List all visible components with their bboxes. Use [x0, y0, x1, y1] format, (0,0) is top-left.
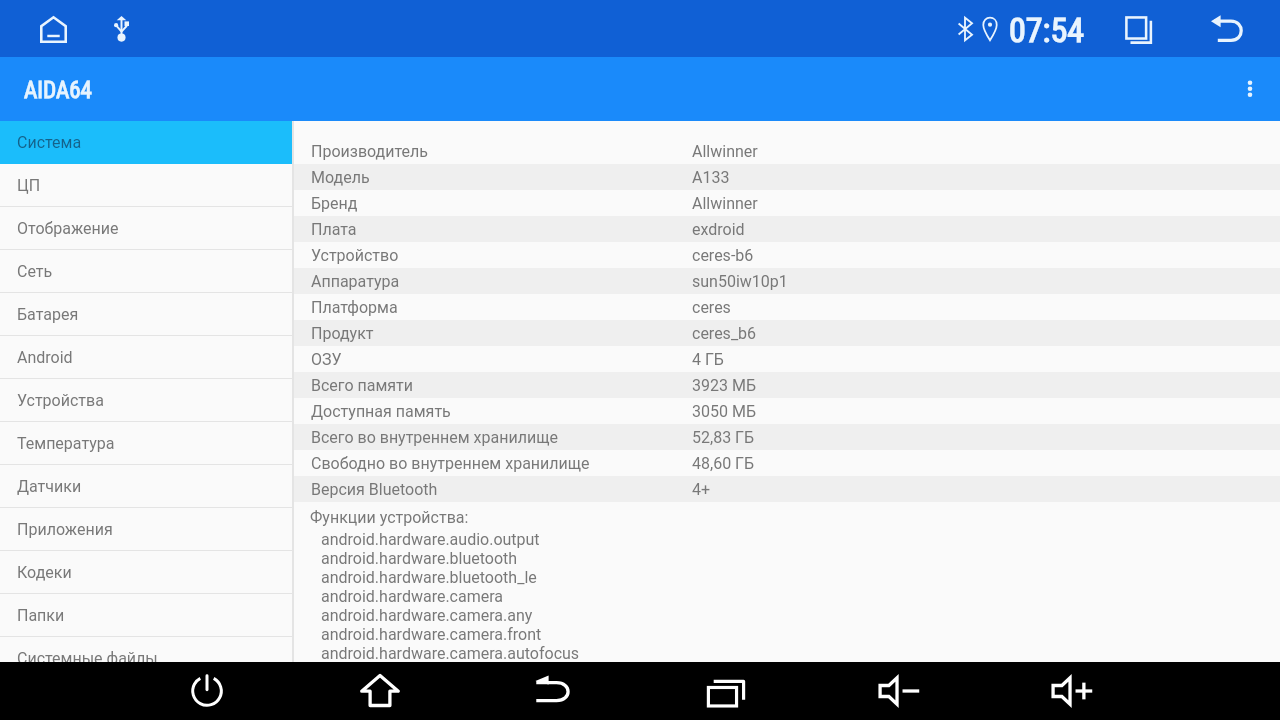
button[interactable]: Батарея [0, 293, 292, 336]
staticText: android.hardware.audio.output [321, 530, 540, 549]
staticText: Функции устройства: [310, 508, 469, 527]
button[interactable]: Back [1206, 9, 1248, 51]
button[interactable]: Power [179, 663, 235, 719]
staticText: android.hardware.camera.autofocus [321, 644, 580, 662]
staticText: 3050 МБ [692, 402, 756, 421]
button[interactable]: Volume up [1044, 663, 1100, 719]
button[interactable]: Устройства [0, 379, 292, 422]
staticText: android.hardware.bluetooth_le [321, 568, 537, 587]
button[interactable]: Отображение [0, 207, 292, 250]
other: Location [982, 17, 998, 41]
button[interactable]: Папки [0, 594, 292, 637]
staticText: AIDA64 [24, 77, 92, 104]
staticText: Отображение [17, 219, 119, 238]
button[interactable]: Всего во внутреннем хранилище [294, 424, 1280, 450]
staticText: A133 [692, 168, 730, 187]
button[interactable]: Продукт [294, 320, 1280, 346]
button[interactable]: Home [40, 16, 67, 43]
button[interactable]: Recents [698, 663, 754, 719]
button[interactable]: Android [0, 336, 292, 379]
button[interactable]: Плата [294, 216, 1280, 242]
button[interactable]: Приложения [0, 508, 292, 551]
button[interactable]: Платформа [294, 294, 1280, 320]
staticText: Система [17, 133, 82, 152]
staticText: ceres_b6 [692, 324, 757, 343]
staticText: Всего памяти [311, 376, 413, 395]
button[interactable]: Back [525, 663, 581, 719]
staticText: 4+ [692, 480, 711, 499]
button[interactable]: Кодеки [0, 551, 292, 594]
staticText: Температура [17, 434, 115, 453]
button[interactable]: Recent apps [1120, 9, 1160, 49]
staticText: ceres [692, 298, 731, 317]
staticText: exdroid [692, 220, 745, 239]
staticText: ОЗУ [311, 350, 342, 369]
button[interactable]: Температура [0, 422, 292, 465]
staticText: ceres-b6 [692, 246, 754, 265]
staticText: ЦП [17, 176, 41, 195]
button[interactable]: Системные файлы [0, 637, 292, 662]
button[interactable]: Volume down [871, 663, 927, 719]
staticText: 48,60 ГБ [692, 454, 755, 473]
staticText: android.hardware.camera [321, 587, 504, 606]
staticText: Платформа [311, 298, 398, 317]
button[interactable]: Сеть [0, 250, 292, 293]
button[interactable]: Свободно во внутреннем хранилище [294, 450, 1280, 476]
staticText: Сеть [17, 262, 53, 281]
staticText: Кодеки [17, 563, 72, 582]
staticText: sun50iw10p1 [692, 272, 788, 291]
staticText: Свободно во внутреннем хранилище [311, 454, 590, 473]
button[interactable]: Производитель [294, 138, 1280, 164]
staticText: Датчики [17, 477, 82, 496]
button[interactable]: USB [114, 16, 129, 43]
staticText: Модель [311, 168, 370, 187]
button[interactable]: ОЗУ [294, 346, 1280, 372]
staticText: Версия Bluetooth [311, 480, 438, 499]
button[interactable]: Система [0, 121, 292, 164]
button[interactable]: Устройство [294, 242, 1280, 268]
staticText: Батарея [17, 305, 79, 324]
staticText: Бренд [311, 194, 358, 213]
button[interactable]: Датчики [0, 465, 292, 508]
staticText: Всего во внутреннем хранилище [311, 428, 558, 447]
button[interactable]: Home [352, 663, 408, 719]
staticText: android.hardware.camera.any [321, 606, 533, 625]
staticText: Allwinner [692, 194, 758, 213]
staticText: 52,83 ГБ [692, 428, 755, 447]
staticText: android.hardware.bluetooth [321, 549, 518, 568]
staticText: Доступная память [311, 402, 451, 421]
button[interactable]: More options [1230, 69, 1270, 109]
staticText: Плата [311, 220, 357, 239]
staticText: Папки [17, 606, 65, 625]
staticText: Android [17, 348, 73, 367]
button[interactable]: ЦП [0, 164, 292, 207]
staticText: Приложения [17, 520, 113, 539]
staticText: 3923 МБ [692, 376, 756, 395]
staticText: Устройства [17, 391, 104, 410]
staticText: 4 ГБ [692, 350, 724, 369]
staticText: 07:54 [1009, 10, 1085, 50]
button[interactable]: Модель [294, 164, 1280, 190]
staticText: Продукт [311, 324, 374, 343]
button[interactable]: Аппаратура [294, 268, 1280, 294]
staticText: Allwinner [692, 142, 758, 161]
staticText: Системные файлы [17, 649, 158, 662]
other: Bluetooth [957, 17, 973, 41]
staticText: Устройство [311, 246, 399, 265]
button[interactable]: Всего памяти [294, 372, 1280, 398]
button[interactable]: Доступная память [294, 398, 1280, 424]
staticText: android.hardware.camera.front [321, 625, 542, 644]
staticText: Производитель [311, 142, 428, 161]
button[interactable]: Версия Bluetooth [294, 476, 1280, 502]
button[interactable]: Бренд [294, 190, 1280, 216]
staticText: Аппаратура [311, 272, 400, 291]
